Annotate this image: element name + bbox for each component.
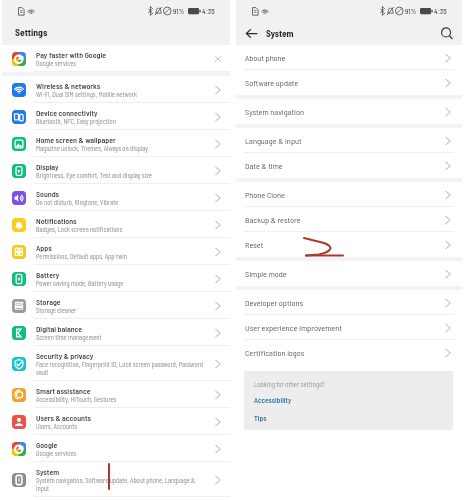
other: Dismiss (213, 54, 223, 64)
staticText: Software update (245, 78, 443, 88)
button[interactable]: Back (243, 25, 260, 42)
staticText: Sounds (36, 189, 60, 198)
button[interactable]: Language & input (236, 128, 462, 153)
button[interactable]: Home screen & wallpaper (2, 130, 230, 157)
button[interactable]: Tips (254, 414, 267, 423)
button[interactable]: Display (2, 157, 230, 184)
staticText: Notifications (36, 216, 77, 225)
staticText: Language & input (245, 136, 443, 146)
staticText: Settings (15, 26, 48, 38)
staticText: Battery (36, 270, 60, 279)
staticText: Backup & restore (245, 215, 443, 225)
staticText: Phone Clone (245, 190, 443, 200)
button[interactable]: Date & time (236, 153, 462, 178)
staticText: Google services (36, 59, 77, 67)
button[interactable]: Reset (236, 232, 462, 257)
button[interactable]: Battery (2, 265, 230, 292)
staticText: Device connectivity (36, 108, 98, 117)
button[interactable]: Certification logos (236, 340, 462, 365)
staticText: Developer options (245, 298, 443, 308)
staticText: Accessibility, HiTouch, Gestures (36, 395, 117, 403)
staticText: Smart assistance (36, 386, 91, 395)
button[interactable]: Google (2, 435, 230, 462)
staticText: Screen time management (36, 333, 102, 341)
staticText: 4:35 (434, 7, 447, 16)
staticText: Bluetooth, NFC, Easy projection (36, 117, 116, 125)
staticText: Do not disturb, Ringtone, Vibrate (36, 198, 119, 206)
staticText: System navigation (245, 107, 443, 117)
button[interactable]: Apps (2, 238, 230, 265)
button[interactable]: System (2, 462, 230, 497)
staticText: 91% (173, 7, 185, 16)
staticText: System (36, 467, 60, 476)
staticText: Pay faster with Google (36, 50, 107, 59)
staticText: User experience improvement (245, 323, 443, 333)
staticText: Storage cleaner (36, 306, 77, 314)
button[interactable]: Developer options (236, 290, 462, 315)
staticText: 4:35 (202, 7, 215, 16)
staticText: Permissions, Default apps, App twin (36, 252, 127, 260)
button[interactable]: Pay faster with Google (2, 45, 230, 72)
button[interactable]: Wireless & networks (2, 76, 230, 103)
button[interactable]: Simple mode (236, 261, 462, 286)
staticText: Simple mode (245, 269, 443, 279)
button[interactable]: Notifications (2, 211, 230, 238)
button[interactable]: About phone (236, 45, 462, 70)
staticText: Date & time (245, 161, 443, 171)
staticText: Power saving mode, Battery usage (36, 279, 124, 287)
button[interactable]: Storage (2, 292, 230, 319)
button[interactable]: Backup & restore (236, 207, 462, 232)
staticText: Certification logos (245, 348, 443, 358)
staticText: Google services (36, 449, 77, 457)
staticText: Apps (36, 243, 52, 252)
staticText: Users & accounts (36, 413, 92, 422)
staticText: Digital balance (36, 324, 83, 333)
button[interactable]: Digital balance (2, 319, 230, 346)
staticText: Home screen & wallpaper (36, 135, 116, 144)
button[interactable]: Smart assistance (2, 381, 230, 408)
staticText: Users, Accounts (36, 422, 78, 430)
staticText: About phone (245, 53, 443, 63)
staticText: Google (36, 440, 58, 449)
button[interactable]: System navigation (236, 99, 462, 124)
button[interactable]: Sounds (2, 184, 230, 211)
button[interactable]: Security & privacy (2, 346, 230, 381)
button[interactable]: Software update (236, 70, 462, 95)
staticText: System (266, 28, 439, 39)
staticText: Wi-Fi, Dual SIM settings, Mobile network (36, 90, 137, 98)
button[interactable]: Accessibility (254, 396, 292, 405)
button[interactable]: Device connectivity (2, 103, 230, 130)
staticText: Face recognition, Fingerprint ID, Lock s… (36, 360, 209, 377)
staticText: Looking for other settings? (254, 380, 325, 388)
button[interactable]: Phone Clone (236, 182, 462, 207)
staticText: Security & privacy (36, 351, 94, 360)
staticText: Storage (36, 297, 61, 306)
button[interactable]: User experience improvement (236, 315, 462, 340)
staticText: Brightness, Eye comfort, Text and displa… (36, 171, 152, 179)
staticText: Wireless & networks (36, 81, 101, 90)
staticText: Magazine unlock, Themes, Always on displ… (36, 144, 148, 152)
staticText: System navigation, Software update, Abou… (36, 476, 209, 493)
button[interactable]: Users & accounts (2, 408, 230, 435)
staticText: 91% (405, 7, 417, 16)
staticText: Reset (245, 240, 443, 250)
staticText: Badges, Lock screen notifications (36, 225, 123, 233)
button[interactable]: Search (439, 26, 455, 42)
staticText: Display (36, 162, 59, 171)
